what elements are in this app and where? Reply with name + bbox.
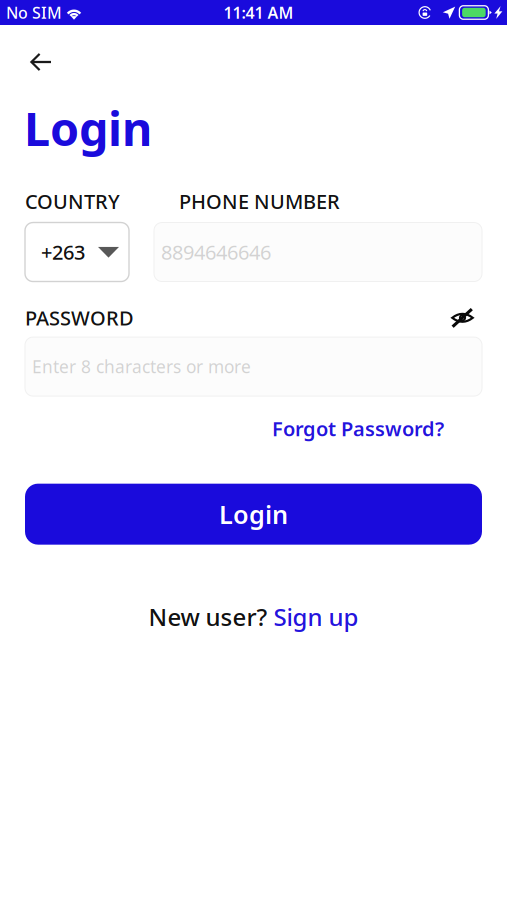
button[interactable]: Sign up [273,601,358,633]
staticText: +263 [41,239,85,265]
staticText: PHONE NUMBER [179,188,340,215]
staticText: PASSWORD [25,304,134,331]
button[interactable]: Show password [451,308,482,327]
staticText: New user? [148,601,273,633]
staticText: Enter 8 characters or more [32,355,251,378]
button[interactable]: Enter 8 characters or more [25,337,482,396]
staticText: Login [219,497,288,531]
button[interactable]: Back [0,40,67,83]
staticText: Login [24,97,152,159]
button[interactable]: Login [25,484,482,545]
staticText: 8894646646 [161,239,271,265]
button[interactable]: Forgot Password? [272,415,444,442]
staticText: COUNTRY [25,188,120,215]
button[interactable]: +263 [25,222,129,281]
staticText: Forgot Password? [272,415,444,442]
staticText: 11:41 AM [223,2,293,23]
staticText: Sign up [273,601,358,633]
button[interactable]: 8894646646 [154,222,482,281]
staticText: No SIM [6,2,62,23]
